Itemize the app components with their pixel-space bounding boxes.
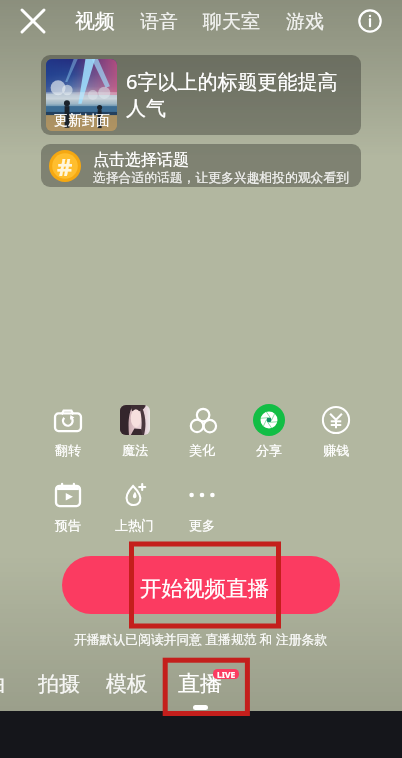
staticText: 上热门 (115, 517, 154, 533)
button[interactable]: 预告 (34, 479, 101, 533)
staticText: 游戏 (286, 10, 324, 34)
button[interactable]: 直播 (178, 670, 222, 698)
staticText: 点击选择话题 (93, 150, 189, 170)
staticText: 美化 (189, 442, 215, 458)
button[interactable]: 翻转 (34, 404, 101, 458)
button[interactable]: 模板 (106, 671, 148, 697)
button[interactable]: 美化 (168, 404, 235, 458)
staticText: 开始视频直播 (140, 575, 269, 602)
button[interactable]: 视频 (75, 9, 115, 34)
button[interactable]: 游戏 (286, 10, 324, 34)
staticText: 预告 (55, 517, 81, 533)
staticText: 魔法 (122, 442, 148, 458)
button[interactable]: 拍摄 (38, 671, 80, 697)
button[interactable]: 开始视频直播 (62, 556, 340, 614)
staticText: 翻转 (55, 442, 81, 458)
staticText: # (57, 150, 73, 182)
button[interactable]: 分享 (235, 404, 302, 458)
staticText: 语音 (140, 10, 178, 34)
staticText: 6字以上的标题更能提高人气 (126, 68, 342, 121)
button[interactable]: 更新封面 (41, 55, 361, 135)
button[interactable]: 上热门 (101, 479, 168, 533)
button[interactable]: 语音 (140, 10, 178, 34)
button[interactable]: 更多 (168, 479, 235, 533)
staticText: 更新封面 (54, 112, 110, 130)
staticText: 选择合适的话题，让更多兴趣相投的观众看到 (93, 170, 349, 186)
staticText: 拍摄 (38, 671, 80, 697)
button[interactable]: Info (355, 6, 385, 36)
staticText: 聊天室 (203, 10, 260, 34)
staticText: 直播 (178, 670, 222, 698)
staticText: 分享 (256, 442, 282, 458)
staticText: 赚钱 (323, 442, 349, 458)
staticText: 白 (0, 671, 7, 697)
button[interactable]: LIVE (213, 669, 239, 679)
staticText: 视频 (75, 9, 115, 34)
staticText: 更多 (189, 517, 215, 533)
button[interactable]: 魔法 (101, 404, 168, 458)
button[interactable]: 开播默认已阅读并同意 直播规范 和 注册条款 (74, 630, 328, 647)
button[interactable]: Close (17, 5, 49, 37)
button[interactable]: 聊天室 (203, 10, 260, 34)
button[interactable]: 白 (0, 671, 7, 697)
staticText: 模板 (106, 671, 148, 697)
staticText: LIVE (217, 669, 236, 679)
button[interactable]: # (41, 144, 361, 187)
button[interactable]: 赚钱 (302, 404, 369, 458)
